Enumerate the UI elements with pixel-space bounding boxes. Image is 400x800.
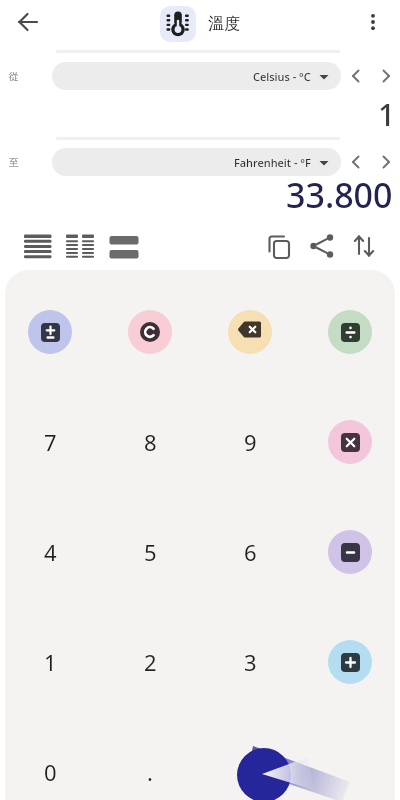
staticText: 8 [144,427,157,457]
staticText: 溫度 [208,14,240,34]
staticText: 0 [44,757,57,787]
button[interactable] [328,640,372,684]
button[interactable] [228,310,272,354]
staticText: 1 [44,647,57,677]
button[interactable] [10,4,46,40]
staticText: 6 [244,537,257,567]
button[interactable]: 5 [128,530,172,574]
button[interactable]: 9 [228,420,272,464]
button[interactable] [328,310,372,354]
button[interactable]: 0 [28,750,72,794]
button[interactable] [348,230,380,262]
button[interactable] [341,62,371,90]
staticText: Celsius - °C [253,69,311,84]
button[interactable]: 4 [28,530,72,574]
button[interactable]: 2 [128,640,172,684]
button[interactable] [358,7,388,37]
staticText: 33.800 [286,172,393,212]
button[interactable]: Fahrenheit - °F [52,148,341,176]
staticText: 7 [44,427,57,457]
button[interactable]: 7 [28,420,72,464]
button[interactable]: 1 [28,640,72,684]
staticText: 9 [244,427,257,457]
button[interactable] [22,230,54,262]
staticText: 5 [144,537,157,567]
button[interactable] [328,420,372,464]
button[interactable] [264,230,296,262]
staticText: Fahrenheit - °F [234,155,311,170]
button[interactable] [306,230,338,262]
button[interactable] [64,230,96,262]
staticText: . [147,757,153,787]
button[interactable] [160,6,196,42]
staticText: 1 [378,94,396,135]
button[interactable] [371,62,400,90]
staticText: 3 [244,647,257,677]
button[interactable]: 3 [228,640,272,684]
button[interactable] [28,310,72,354]
button[interactable]: 8 [128,420,172,464]
staticText: 至 [9,156,19,169]
button[interactable] [108,230,140,262]
button[interactable] [128,310,172,354]
button[interactable] [328,530,372,574]
button[interactable] [371,148,400,176]
staticText: 4 [44,537,57,567]
button[interactable]: Celsius - °C [52,62,341,90]
staticText: 2 [144,647,157,677]
button[interactable]: 6 [228,530,272,574]
staticText: 從 [9,70,19,83]
button[interactable]: . [128,750,172,794]
button[interactable] [341,148,371,176]
